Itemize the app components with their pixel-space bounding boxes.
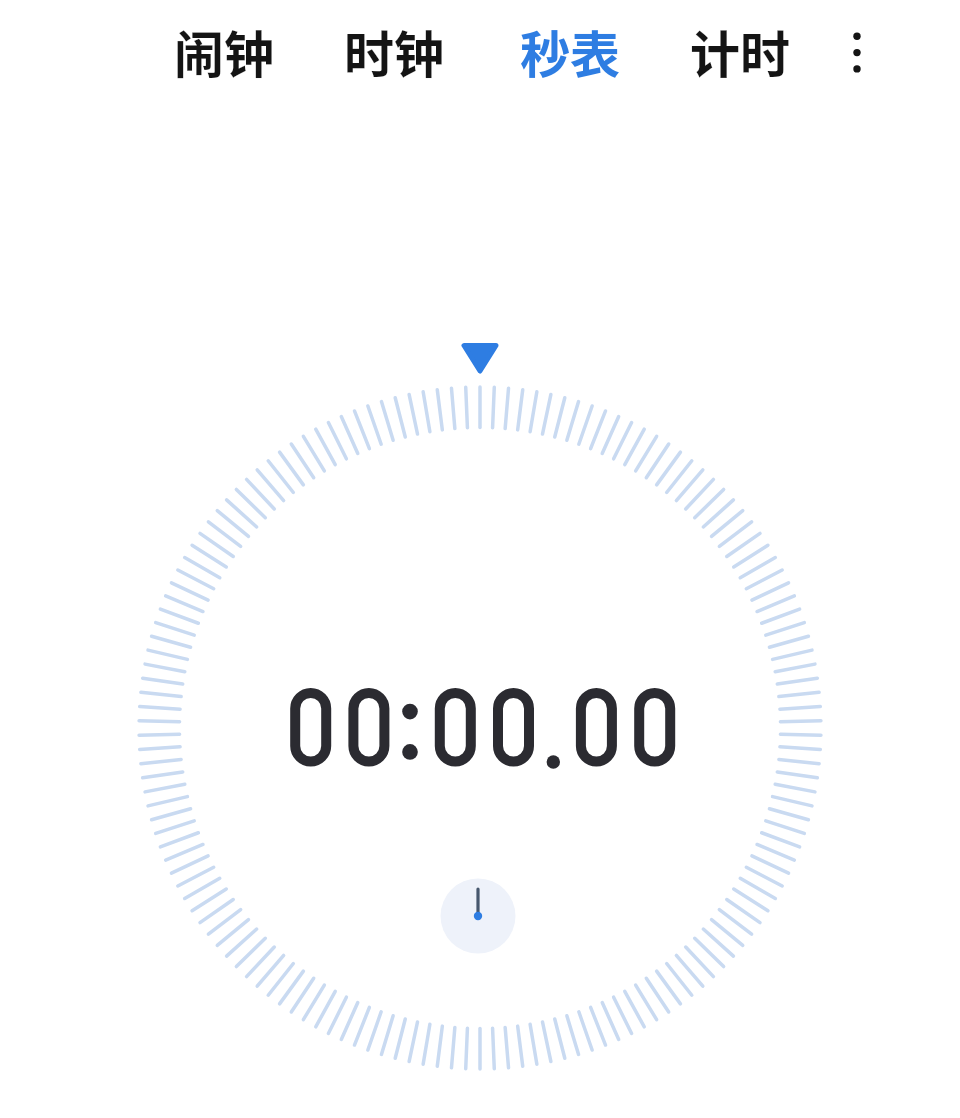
staticText: 秒表 bbox=[520, 15, 620, 87]
staticText: 时钟 bbox=[344, 15, 444, 87]
button[interactable]: 秒表 bbox=[495, 10, 645, 92]
button[interactable] bbox=[825, 20, 889, 86]
button[interactable]: 计时 bbox=[665, 10, 815, 92]
staticText: 闹钟 bbox=[174, 15, 274, 87]
button[interactable]: 闹钟 bbox=[149, 10, 299, 92]
button[interactable]: 时钟 bbox=[319, 10, 469, 92]
staticText: 计时 bbox=[690, 15, 790, 87]
